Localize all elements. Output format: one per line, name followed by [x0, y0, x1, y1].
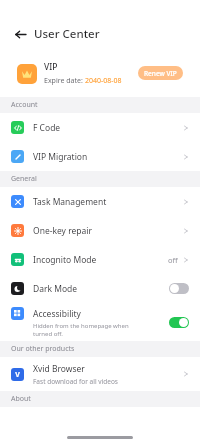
staticText: Task Management [33, 196, 107, 208]
staticText: About [11, 394, 31, 404]
staticText: VIP [44, 61, 58, 73]
button[interactable]: Task Management [0, 187, 200, 216]
button[interactable]: Dark Mode [169, 283, 189, 294]
button[interactable]: Renew VIP [138, 66, 183, 80]
staticText: Account [11, 100, 38, 110]
staticText: 2040-08-08 [85, 76, 122, 86]
button[interactable]: F Code [0, 113, 200, 142]
button[interactable]: Accessibility [169, 317, 189, 328]
staticText: Expire date: [44, 76, 85, 86]
staticText: V [15, 370, 20, 380]
button[interactable]: Incognito Mode [0, 245, 200, 274]
button[interactable]: VIP Migration [0, 142, 200, 171]
staticText: Incognito Mode [33, 254, 97, 266]
button[interactable]: VIP [10, 52, 190, 94]
button[interactable]: Back [11, 25, 29, 43]
staticText: Renew VIP [144, 69, 177, 78]
staticText: off [168, 255, 178, 265]
button[interactable]: Dark Mode [0, 274, 200, 303]
staticText: VIP Migration [33, 151, 88, 163]
button[interactable]: Accessibility [0, 303, 200, 341]
staticText: Xvid Browser [33, 363, 85, 375]
staticText: General [11, 174, 37, 184]
staticText: User Center [34, 26, 100, 42]
staticText: Accessibility [33, 308, 81, 320]
staticText: Our other products [11, 344, 75, 354]
staticText: F Code [33, 122, 61, 134]
staticText: Dark Mode [33, 283, 78, 295]
staticText: One-key repair [33, 225, 92, 237]
button[interactable]: One-key repair [0, 216, 200, 245]
staticText: Hidden from the homepage when turned off… [33, 322, 129, 338]
button[interactable]: V [0, 357, 200, 391]
staticText: Fast download for all videos [33, 377, 118, 386]
